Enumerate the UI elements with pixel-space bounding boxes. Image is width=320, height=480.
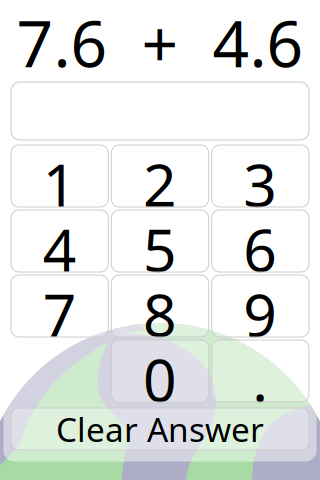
- staticText: 8: [143, 275, 177, 337]
- button[interactable]: 2: [111, 145, 209, 207]
- staticText: 5: [143, 210, 177, 272]
- staticText: 7.6 + 4.6: [16, 0, 303, 85]
- staticText: 0: [143, 340, 177, 402]
- staticText: 2: [143, 145, 177, 207]
- staticText: 6: [243, 210, 277, 272]
- button[interactable]: 1: [11, 145, 108, 207]
- button[interactable]: .: [212, 340, 309, 402]
- button[interactable]: 0: [111, 340, 209, 402]
- button[interactable]: 5: [111, 210, 209, 272]
- staticText: 9: [243, 275, 277, 337]
- staticText: Clear Answer: [56, 407, 264, 451]
- staticText: 4: [43, 210, 77, 272]
- button[interactable]: 3: [212, 145, 309, 207]
- button[interactable]: 4: [11, 210, 108, 272]
- button[interactable]: 8: [111, 275, 209, 337]
- staticText: 3: [243, 145, 277, 207]
- staticText: 7: [43, 275, 77, 337]
- button[interactable]: 9: [212, 275, 309, 337]
- button[interactable]: 6: [212, 210, 309, 272]
- button[interactable]: Clear Answer: [11, 408, 309, 450]
- button[interactable]: 7: [11, 275, 108, 337]
- staticText: .: [252, 340, 268, 402]
- staticText: 1: [43, 145, 77, 207]
